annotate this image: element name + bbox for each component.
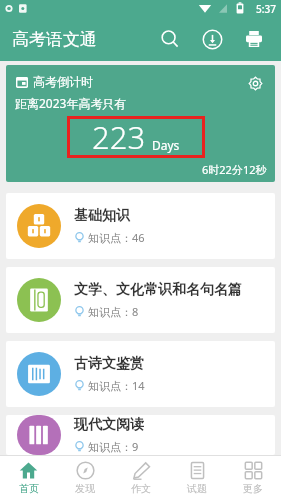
staticText: 作文 xyxy=(131,482,151,495)
staticText: 现代文阅读 xyxy=(74,416,144,434)
staticText: 首页 xyxy=(19,482,39,495)
staticText: 高考语文通 xyxy=(12,29,97,50)
staticText: 古诗文鉴赏 xyxy=(74,355,144,373)
button[interactable]: Search xyxy=(149,18,191,60)
staticText: 基础知识 xyxy=(74,207,130,225)
button[interactable]: Print xyxy=(233,18,275,60)
button[interactable]: Settings xyxy=(242,70,268,96)
button[interactable]: 首页 xyxy=(0,456,57,500)
button[interactable]: 高考倒计时 xyxy=(6,65,275,182)
staticText: 更多 xyxy=(243,482,263,495)
button[interactable]: Download xyxy=(191,18,233,60)
staticText: 发现 xyxy=(75,482,95,495)
staticText: 6时22分12秒 xyxy=(202,162,267,177)
button[interactable]: 基础知识 xyxy=(6,193,275,259)
staticText: 距离2023年高考只有 xyxy=(15,95,127,111)
staticText: 知识点：8 xyxy=(88,304,139,319)
button[interactable]: 试题 xyxy=(169,456,225,500)
staticText: 试题 xyxy=(187,482,207,495)
button[interactable]: 发现 xyxy=(57,456,113,500)
staticText: 高考倒计时 xyxy=(33,74,93,89)
staticText: 文学、文化常识和名句名篇 xyxy=(74,281,242,299)
staticText: 知识点：46 xyxy=(88,230,145,245)
staticText: 5:37 xyxy=(256,2,276,16)
staticText: 知识点：14 xyxy=(88,378,145,393)
staticText: 知识点：9 xyxy=(88,439,139,454)
button[interactable]: 文学、文化常识和名句名篇 xyxy=(6,267,275,333)
staticText: Days xyxy=(152,137,180,153)
button[interactable]: 现代文阅读 xyxy=(6,415,275,455)
button[interactable]: 作文 xyxy=(113,456,169,500)
button[interactable]: 更多 xyxy=(225,456,281,500)
button[interactable]: 古诗文鉴赏 xyxy=(6,341,275,407)
staticText: 223 xyxy=(92,116,146,158)
